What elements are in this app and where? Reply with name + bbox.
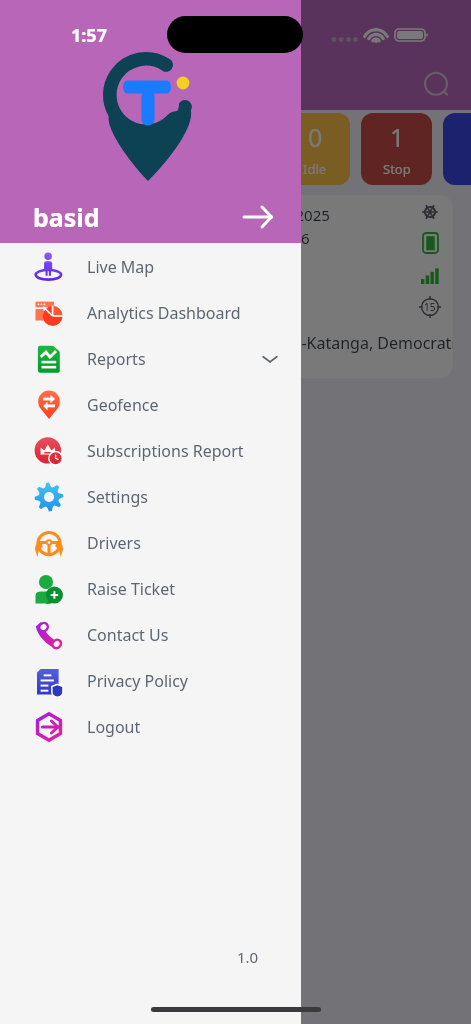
staticText: Reports <box>87 348 146 370</box>
button[interactable]: 2 <box>443 113 471 185</box>
staticText: 0 <box>308 120 323 154</box>
other: Search <box>423 70 451 98</box>
staticText: basid <box>33 200 100 234</box>
staticText: Idle <box>303 160 327 178</box>
button[interactable]: Privacy Policy <box>0 658 301 704</box>
staticText: 12/06/2025 <box>250 205 330 225</box>
button[interactable]: Settings <box>0 474 301 520</box>
staticText: 1.0 <box>237 947 259 967</box>
staticText: Privacy Policy <box>87 670 188 692</box>
staticText: Contact Us <box>87 624 169 646</box>
button[interactable]: Raise Ticket <box>0 566 301 612</box>
staticText: 14:35:16 <box>250 228 310 248</box>
button[interactable]: Reports <box>0 336 301 382</box>
staticText: Raise Ticket <box>87 578 175 600</box>
staticText: Subscriptions Report <box>87 440 244 462</box>
staticText: Stop <box>383 160 411 178</box>
staticText: 3 <box>143 120 158 154</box>
other: Close drawer <box>243 202 273 232</box>
button[interactable]: Logout <box>0 704 301 750</box>
staticText: Geofence <box>87 394 159 416</box>
button[interactable]: 3 <box>115 113 186 185</box>
staticText: Drivers <box>87 532 141 554</box>
staticText: Logout <box>87 716 141 738</box>
staticText: Live Map <box>87 256 155 278</box>
staticText: Settings <box>87 486 148 508</box>
button[interactable]: Drivers <box>0 520 301 566</box>
button[interactable]: 1 <box>361 113 432 185</box>
button[interactable]: Geofence <box>0 382 301 428</box>
button[interactable]: Analytics Dashboard <box>0 290 301 336</box>
staticText: Run <box>138 160 163 178</box>
button[interactable]: Contact Us <box>0 612 301 658</box>
staticText: Lubumbashi, Haut-Katanga, Democratic <box>163 332 453 354</box>
staticText: 15 <box>424 300 436 314</box>
button[interactable]: 0 <box>279 113 350 185</box>
button[interactable]: Subscriptions Report <box>0 428 301 474</box>
staticText: 1 <box>390 120 405 154</box>
button[interactable]: Live Map <box>0 244 301 290</box>
staticText: Analytics Dashboard <box>87 302 241 324</box>
staticText: 1:57 <box>71 23 107 48</box>
